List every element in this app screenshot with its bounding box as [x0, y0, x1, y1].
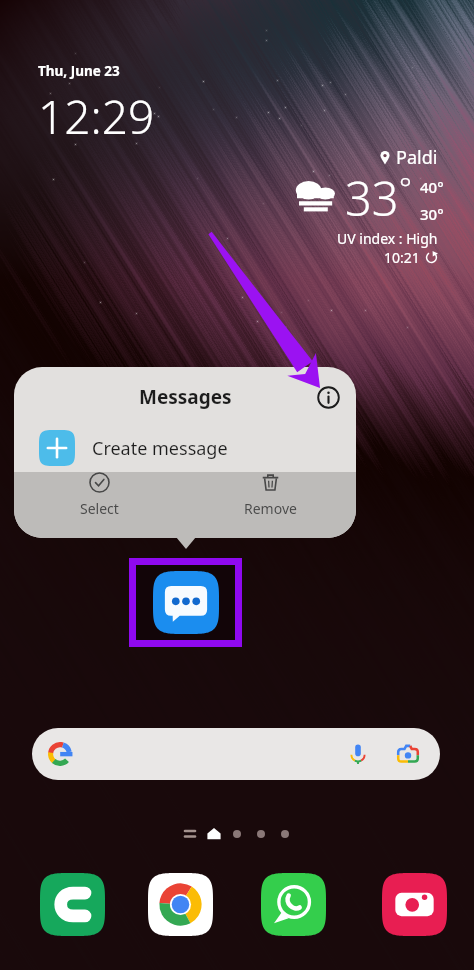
button[interactable]: WhatsApp — [257, 868, 329, 940]
staticText: 40° — [420, 177, 444, 197]
button[interactable]: Messages app — [136, 565, 235, 640]
button[interactable]: Chrome — [144, 868, 216, 940]
staticText: Paldi — [396, 145, 438, 170]
button[interactable]: Google search — [32, 728, 440, 780]
staticText: Remove — [244, 499, 297, 518]
staticText: 12:29 — [38, 85, 155, 148]
staticText: 10:21 — [384, 248, 420, 267]
staticText: ° — [399, 167, 412, 208]
staticText: 33 — [345, 166, 399, 230]
button[interactable]: Create message — [14, 424, 356, 472]
staticText: Messages — [139, 384, 232, 410]
button[interactable]: Phone — [36, 868, 108, 940]
button[interactable]: Voice search — [345, 741, 371, 767]
staticText: Thu, June 23 — [38, 62, 120, 80]
staticText: 30° — [420, 204, 444, 224]
button[interactable]: Google Lens — [395, 741, 421, 767]
button[interactable]: Camera — [378, 868, 450, 940]
staticText: Create message — [92, 436, 228, 461]
staticText: UV index : High — [337, 229, 438, 248]
staticText: Select — [80, 499, 119, 518]
button[interactable]: Remove — [185, 472, 356, 518]
button[interactable]: Select — [14, 472, 185, 518]
button[interactable]: App info — [313, 382, 343, 412]
